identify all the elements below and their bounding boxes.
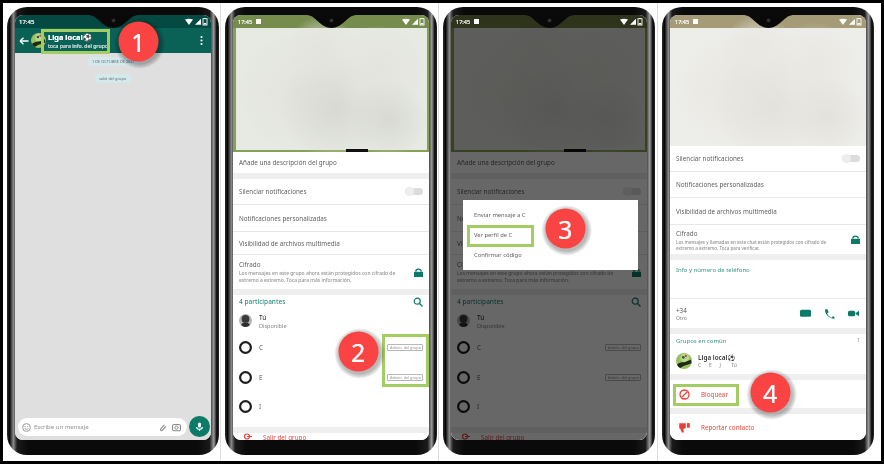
staticText: Cifrado	[239, 260, 261, 269]
staticText: Tú	[477, 313, 485, 322]
button[interactable]: Voice message	[189, 416, 210, 437]
staticText: Enviar mensaje a C	[474, 211, 526, 219]
staticText: Silenciar notificaciones	[676, 154, 744, 163]
staticText: Añade una descripción del grupo	[239, 158, 337, 167]
staticText: I	[259, 402, 262, 411]
staticText: 4 participantes	[239, 297, 412, 306]
staticText: E	[477, 373, 481, 382]
button[interactable]: Search	[630, 296, 641, 307]
button[interactable]: Notificaciones personalizadas	[451, 205, 647, 231]
button[interactable]: Salir del grupo	[233, 433, 429, 440]
button[interactable]: C	[233, 333, 429, 362]
staticText: Admin. del grupo	[608, 345, 639, 350]
button[interactable]: Liga local⚽	[670, 347, 866, 374]
button[interactable]: I	[451, 392, 647, 421]
staticText: 17:45	[19, 18, 35, 26]
staticText: Grupos en común	[676, 337, 857, 345]
staticText: Silenciar notificaciones	[239, 187, 307, 196]
button[interactable]: Silenciar notificaciones	[451, 179, 647, 204]
staticText: Visibilidad de archivos multimedia	[239, 239, 340, 248]
staticText: 1	[131, 25, 146, 59]
button[interactable]: Tú	[451, 308, 647, 333]
staticText: Silenciar notificaciones	[457, 187, 525, 196]
button[interactable]: I	[233, 392, 429, 421]
button[interactable]: Escribe un mensaje	[18, 418, 187, 436]
button[interactable]: Video call	[847, 307, 860, 320]
staticText: Ver perfil de C	[474, 231, 513, 239]
button[interactable]: More options	[195, 34, 208, 47]
button[interactable]: E	[233, 362, 429, 392]
staticText: Admin. del grupo	[390, 375, 421, 380]
button[interactable]: Cifrado	[451, 255, 647, 289]
staticText: 1 DE OCTUBRE DE 2021	[92, 59, 135, 64]
staticText: 17:45	[238, 18, 253, 25]
staticText: Admin. del grupo	[390, 345, 421, 350]
button[interactable]: Back	[15, 28, 211, 53]
button[interactable]: Enviar mensaje a C	[463, 205, 638, 225]
staticText: C	[477, 343, 481, 352]
button[interactable]: Notificaciones personalizadas	[233, 205, 429, 231]
staticText: Disponible	[477, 322, 505, 329]
staticText: Liga local⚽	[698, 353, 736, 362]
staticText: Tú	[259, 313, 267, 322]
staticText: 1	[857, 337, 860, 344]
button[interactable]: Search	[412, 296, 423, 307]
staticText: Escribe un mensaje	[34, 423, 158, 431]
button[interactable]: Message	[799, 307, 812, 320]
button[interactable]: Reportar contacto	[670, 414, 866, 440]
staticText: Notificaciones personalizadas	[676, 180, 764, 189]
staticText: Añade una descripción del grupo	[457, 158, 555, 167]
staticText: 2	[351, 335, 366, 369]
staticText: Confirmar código	[474, 251, 522, 259]
button[interactable]: Back	[17, 34, 30, 47]
staticText: Notificaciones personalizadas	[457, 214, 545, 223]
button[interactable]: Visibilidad de archivos multimedia	[670, 198, 866, 224]
staticText: 17:45	[456, 18, 471, 25]
staticText: 3	[558, 212, 573, 246]
button[interactable]: C	[451, 333, 647, 362]
staticText: Otro	[676, 315, 687, 322]
staticText: Salir del grupo	[481, 433, 525, 440]
staticText: C E J Tú	[698, 362, 737, 369]
button[interactable]: Notificaciones personalizadas	[670, 172, 866, 197]
button[interactable]: Silenciar notificaciones	[670, 146, 866, 171]
staticText: E	[259, 373, 263, 382]
staticText: salió del grupo	[99, 76, 127, 81]
staticText: Liga local⚽	[48, 32, 92, 42]
staticText: Disponible	[259, 322, 287, 329]
staticText: toca para info. del grupo	[48, 42, 109, 49]
staticText: Cifrado	[676, 229, 698, 238]
staticText: I	[477, 402, 480, 411]
staticText: C	[259, 343, 263, 352]
staticText: Cifrado	[457, 260, 479, 269]
staticText: 4 participantes	[457, 297, 630, 306]
button[interactable]: Añade una descripción del grupo	[233, 152, 429, 173]
button[interactable]: +34	[670, 299, 866, 328]
button[interactable]: Cifrado	[670, 225, 866, 254]
button[interactable]: Info y número de teléfono	[670, 260, 866, 298]
button[interactable]: Añade una descripción del grupo	[451, 152, 647, 173]
staticText: +34	[676, 306, 687, 315]
staticText: Salir del grupo	[263, 433, 307, 440]
staticText: 4	[763, 376, 778, 410]
button[interactable]: Salir del grupo	[451, 433, 647, 440]
button[interactable]: Silenciar notificaciones	[233, 179, 429, 204]
button[interactable]: E	[451, 362, 647, 392]
staticText: Los mensajes en este grupo ahora están p…	[457, 270, 614, 284]
staticText: 17:45	[675, 18, 690, 25]
button[interactable]: Confirmar código	[463, 245, 638, 265]
staticText: Visibilidad de archivos multimedia	[676, 207, 777, 216]
staticText: Bloquear	[701, 390, 728, 399]
button[interactable]: Cifrado	[233, 255, 429, 289]
staticText: Info y número de teléfono	[676, 266, 750, 274]
staticText: Los mensajes y llamadas en este chat est…	[676, 239, 827, 251]
button[interactable]: Visibilidad de archivos multimedia	[451, 232, 647, 254]
button[interactable]: Tú	[233, 308, 429, 333]
button[interactable]: Bloquear	[670, 380, 866, 408]
staticText: Admin. del grupo	[608, 375, 639, 380]
button[interactable]: Ver perfil de C	[463, 225, 638, 245]
staticText: Notificaciones personalizadas	[239, 214, 327, 223]
button[interactable]: Visibilidad de archivos multimedia	[233, 232, 429, 254]
staticText: Reportar contacto	[701, 423, 755, 432]
button[interactable]: Call	[823, 307, 836, 320]
